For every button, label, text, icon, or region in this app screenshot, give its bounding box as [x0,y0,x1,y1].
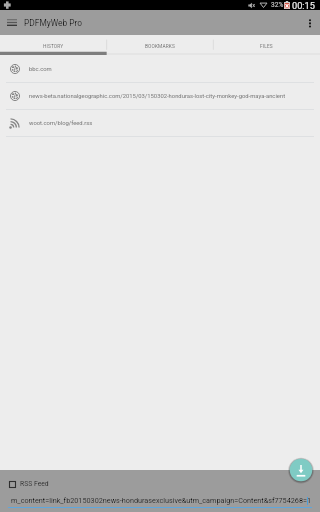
button[interactable]: HISTORY [0,35,106,55]
button[interactable]: Download [288,457,314,483]
staticText: 32% [271,1,284,9]
staticText: news-beta.nationalgeographic.com/2015/03… [29,93,286,100]
staticText: RSS Feed [20,480,49,488]
button[interactable]: FILES [213,35,320,55]
button[interactable]: bbc.com [0,56,320,83]
staticText: FILES [260,44,273,50]
button[interactable]: woot.com/blog/feed.rss [0,110,320,137]
staticText: 00:15 [292,0,315,10]
staticText: bbc.com [29,66,52,73]
staticText: PDFMyWeb Pro [24,18,83,28]
staticText: HISTORY [43,44,64,50]
button[interactable]: More options [300,10,320,35]
staticText: m_content=link_fb20150302news-hondurasex… [11,496,312,504]
button[interactable]: RSS Feed [9,477,320,491]
staticText: BOOKMARKS [145,44,175,50]
button[interactable]: BOOKMARKS [106,35,213,55]
button[interactable]: Navigation menu [0,10,24,35]
staticText: woot.com/blog/feed.rss [29,120,93,127]
button[interactable]: news-beta.nationalgeographic.com/2015/03… [0,83,320,110]
